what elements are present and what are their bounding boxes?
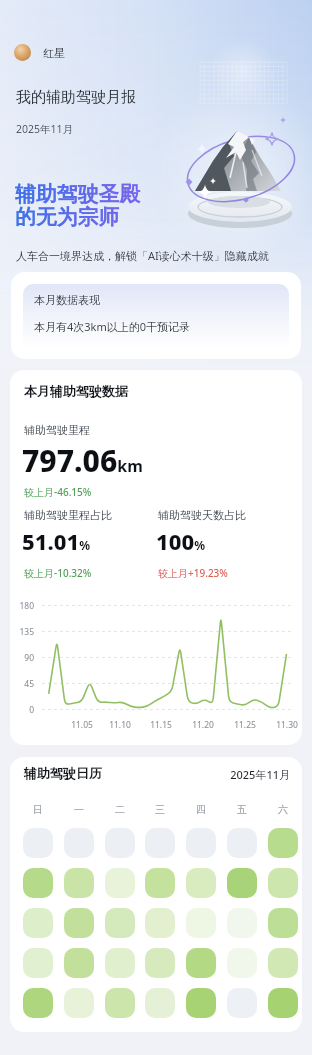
button[interactable] <box>145 988 175 1018</box>
staticText: 11.30 <box>274 719 300 731</box>
button[interactable] <box>268 948 298 978</box>
staticText: 五 <box>227 803 257 816</box>
button[interactable] <box>227 868 257 898</box>
staticText: 二 <box>105 803 135 816</box>
staticText: 11.15 <box>148 719 174 731</box>
button[interactable] <box>11 272 301 359</box>
button[interactable] <box>64 868 94 898</box>
button[interactable] <box>14 44 31 61</box>
button[interactable] <box>268 828 298 858</box>
button[interactable] <box>23 988 53 1018</box>
button[interactable] <box>105 988 135 1018</box>
staticText: 较上月-10.32% <box>24 566 92 580</box>
button[interactable] <box>186 868 216 898</box>
staticText: 0 <box>16 704 34 716</box>
staticText: 六 <box>268 803 298 816</box>
button[interactable] <box>64 828 94 858</box>
staticText: 人车合一境界达成，解锁「AI读心术十级」隐藏成就 <box>16 248 269 263</box>
button[interactable] <box>23 948 53 978</box>
staticText: 辅助驾驶里程占比 <box>24 508 112 522</box>
staticText: 11.05 <box>69 719 95 731</box>
staticText: 我的辅助驾驶月报 <box>16 88 136 107</box>
staticText: 11.20 <box>190 719 216 731</box>
button[interactable] <box>186 948 216 978</box>
button[interactable] <box>64 948 94 978</box>
button[interactable] <box>145 948 175 978</box>
button[interactable] <box>145 828 175 858</box>
button[interactable] <box>186 908 216 938</box>
button[interactable] <box>10 757 302 1032</box>
staticText: 的无为宗师 <box>15 204 120 230</box>
staticText: 180 <box>16 600 34 612</box>
button[interactable] <box>227 988 257 1018</box>
staticText: 90 <box>16 652 34 664</box>
staticText: 本月有4次3km以上的0干预记录 <box>34 319 191 334</box>
staticText: 辅助驾驶里程 <box>24 423 90 437</box>
staticText: 辅助驾驶圣殿 <box>15 181 141 207</box>
staticText: 2025年11月 <box>16 122 74 136</box>
staticText: 辅助驾驶天数占比 <box>158 508 246 522</box>
staticText: 本月数据表现 <box>34 293 100 307</box>
button[interactable] <box>145 868 175 898</box>
button[interactable] <box>145 908 175 938</box>
button[interactable] <box>268 988 298 1018</box>
button[interactable] <box>186 988 216 1018</box>
button[interactable] <box>23 868 53 898</box>
staticText: 797.06km <box>22 440 143 481</box>
staticText: 45 <box>16 678 34 690</box>
button[interactable] <box>105 908 135 938</box>
staticText: 2025年11月 <box>226 767 290 782</box>
button[interactable] <box>105 828 135 858</box>
staticText: 较上月+19.23% <box>158 566 228 580</box>
button[interactable] <box>227 948 257 978</box>
staticText: 红星 <box>43 46 65 60</box>
staticText: 四 <box>186 803 216 816</box>
button[interactable] <box>105 948 135 978</box>
staticText: 100% <box>156 526 205 556</box>
staticText: 三 <box>145 803 175 816</box>
staticText: 51.01% <box>22 526 90 556</box>
staticText: 日 <box>23 803 53 816</box>
button[interactable] <box>186 828 216 858</box>
staticText: 较上月-46.15% <box>24 485 92 499</box>
button[interactable] <box>10 370 302 745</box>
staticText: 11.10 <box>107 719 133 731</box>
staticText: 辅助驾驶日历 <box>24 765 102 781</box>
staticText: 11.25 <box>232 719 258 731</box>
button[interactable] <box>227 828 257 858</box>
button[interactable] <box>64 988 94 1018</box>
button[interactable] <box>268 908 298 938</box>
staticText: 本月辅助驾驶数据 <box>24 383 128 399</box>
button[interactable] <box>64 908 94 938</box>
staticText: 135 <box>16 626 34 638</box>
staticText: 一 <box>64 803 94 816</box>
button[interactable] <box>23 828 53 858</box>
button[interactable] <box>268 868 298 898</box>
button[interactable] <box>105 868 135 898</box>
button[interactable] <box>227 908 257 938</box>
button[interactable] <box>23 908 53 938</box>
